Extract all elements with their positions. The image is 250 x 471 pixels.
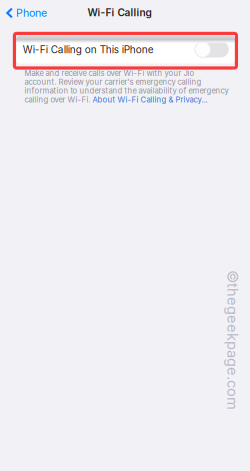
staticText: account. Review your carrier's emergency… xyxy=(24,77,201,87)
staticText: information to understand the availabili… xyxy=(24,86,228,95)
staticText: About Wi-Fi Calling & Privacy... xyxy=(93,95,208,104)
staticText: Phone xyxy=(16,6,47,19)
button[interactable]: About Wi-Fi Calling & Privacy... xyxy=(93,95,208,104)
staticText: Make and receive calls over Wi-Fi with y… xyxy=(24,69,194,78)
staticText: ©thegeekpage.com xyxy=(162,331,250,349)
staticText: calling over Wi-Fi. xyxy=(24,95,90,104)
button[interactable]: Wi-Fi Calling on This iPhone xyxy=(16,35,235,63)
staticText: Wi-Fi Calling xyxy=(87,6,151,19)
staticText: Wi-Fi Calling on This iPhone xyxy=(23,43,154,56)
button[interactable]: Phone xyxy=(3,3,50,23)
